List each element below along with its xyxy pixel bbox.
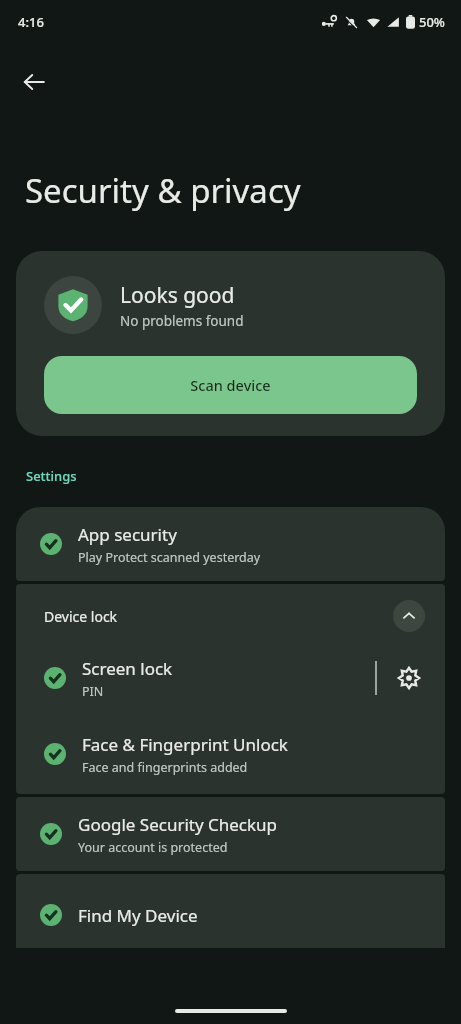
button[interactable]: Screen lock settings	[389, 658, 429, 698]
staticText: Face & Fingerprint Unlock	[82, 733, 288, 756]
staticText: Device lock	[44, 607, 393, 626]
staticText: No problems found	[120, 312, 244, 330]
staticText: PIN	[82, 683, 104, 700]
staticText: App security	[78, 523, 177, 546]
button[interactable]: Back	[10, 58, 58, 106]
button[interactable]: App security	[16, 507, 445, 581]
staticText: 4:16	[18, 13, 44, 31]
staticText: Scan device	[190, 375, 271, 395]
staticText: Face and fingerprints added	[82, 759, 248, 776]
staticText: Play Protect scanned yesterday	[78, 549, 261, 566]
button[interactable]: Device lock	[16, 584, 445, 642]
button[interactable]: Scan device	[44, 356, 417, 414]
staticText: 50%	[419, 13, 445, 31]
staticText: Looks good	[120, 281, 235, 310]
staticText: Settings	[26, 467, 77, 485]
button[interactable]: Screen lock	[16, 642, 445, 714]
button[interactable]: Find My Device	[16, 874, 445, 948]
staticText: Google Security Checkup	[78, 813, 278, 836]
staticText: Your account is protected	[78, 839, 228, 856]
staticText: Screen lock	[82, 657, 173, 680]
staticText: Find My Device	[78, 904, 198, 927]
button[interactable]: Face & Fingerprint Unlock	[16, 714, 445, 794]
staticText: Security & privacy	[25, 168, 301, 213]
button[interactable]: Google Security Checkup	[16, 797, 445, 871]
